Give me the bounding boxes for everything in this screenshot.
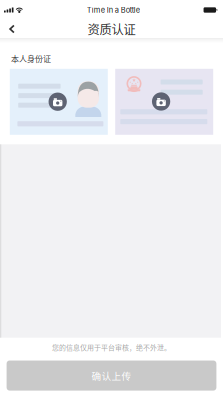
staticText: 本人身份证 [11,53,51,64]
staticText: 您的信息仅用于平台审核，绝不外泄。 [52,342,171,352]
staticText: Time In a Bottle [87,5,140,14]
staticText: 确认上传 [91,369,131,382]
button[interactable]: Back [0,20,24,38]
button[interactable]: 上传身份证人像面 [10,69,108,135]
staticText: 资质认证 [87,20,135,38]
button[interactable]: 确认上传 [7,360,216,391]
button[interactable]: 上传身份证国徽面 [115,69,213,135]
